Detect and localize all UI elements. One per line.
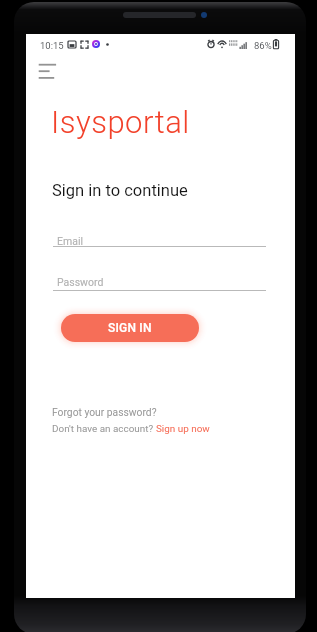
staticText: Don't have an account? <box>52 423 156 435</box>
staticText: Email <box>57 235 83 247</box>
button[interactable]: Sign up now <box>156 423 210 435</box>
button[interactable]: SIGN IN <box>61 314 199 342</box>
staticText: Sign in to continue <box>52 181 188 200</box>
staticText: 10:15 <box>40 40 64 51</box>
staticText: Isysportal <box>51 104 190 140</box>
staticText: SIGN IN <box>108 321 152 335</box>
button[interactable]: Forgot your password? <box>52 406 157 418</box>
staticText: 86% <box>254 40 272 51</box>
button[interactable]: Open navigation menu <box>32 57 64 85</box>
staticText: Password <box>57 276 104 288</box>
